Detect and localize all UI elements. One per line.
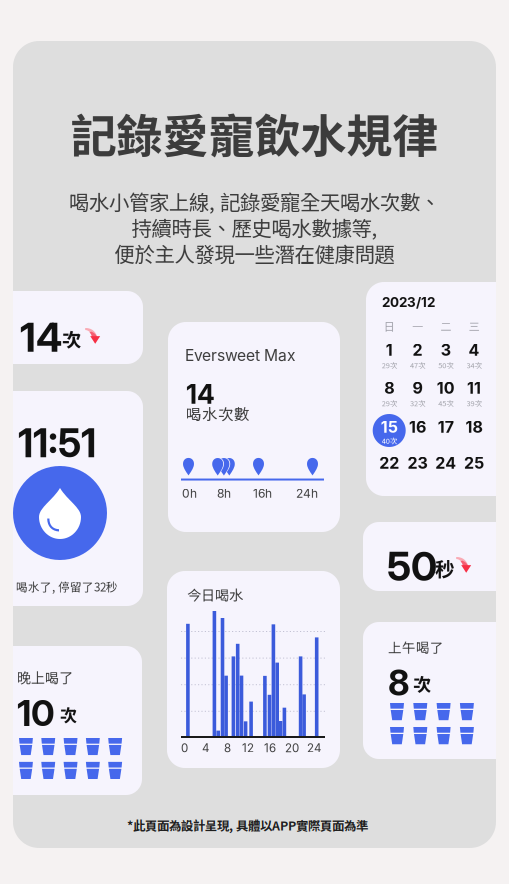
staticText: 32次 [410,398,425,408]
staticText: 10 [437,378,455,398]
staticText: 20 [285,741,299,755]
staticText: 次 [62,325,81,352]
staticText: 日 [384,318,395,334]
staticText: 2 [412,340,422,360]
button[interactable]: 14 [0,0,509,884]
staticText: 50 [387,542,437,590]
staticText: 16 [409,417,426,437]
staticText: 4 [202,741,209,755]
staticText: 晚上喝了 [17,667,73,687]
button[interactable]: 50 [0,0,509,884]
staticText: 喝水了, 停留了32秒 [16,578,118,595]
staticText: 23 [407,453,427,473]
staticText: 次 [413,670,431,696]
staticText: 11:51 [18,420,96,467]
button[interactable]: 晚上喝了 [0,0,509,884]
staticText: 34次 [467,360,482,370]
staticText: 24 [435,453,456,473]
button[interactable]: 上午喝了 [0,0,509,884]
staticText: 12 [242,741,254,755]
staticText: 14 [186,378,215,410]
staticText: 22 [379,453,399,473]
staticText: 喝水次數 [186,402,250,424]
staticText: 9 [412,378,422,398]
button[interactable]: 2023/12 [0,0,509,884]
staticText: 17 [438,417,454,437]
staticText: 二 [440,318,451,334]
staticText: 上午喝了 [388,637,444,656]
staticText: 40次 [382,435,397,446]
staticText: 29次 [382,398,397,408]
button[interactable]: 今日喝水 [0,0,509,884]
staticText: 1 [386,340,393,360]
staticText: 10 [17,691,55,735]
staticText: 8 [384,378,394,398]
staticText: 記錄愛寵飲水規律 [70,100,438,166]
staticText: 50次 [438,360,453,370]
staticText: 2023/12 [382,294,435,310]
staticText: 0 [181,741,188,755]
staticText: 秒 [435,554,455,582]
staticText: *此頁面為設計呈現, 具體以APP實際頁面為準 [127,816,368,834]
staticText: 喝水小管家上線, 記錄愛寵全天喝水次數、 [69,186,440,216]
staticText: 8 [388,662,410,704]
staticText: 持續時長、歷史喝水數據等, [131,212,377,242]
staticText: 三 [469,318,480,334]
staticText: 24h [296,486,318,500]
staticText: 16 [264,741,276,755]
staticText: 24 [307,741,321,755]
staticText: 便於主人發現一些潛在健康問題 [114,238,394,268]
staticText: 今日喝水 [187,584,243,605]
staticText: 16h [253,486,272,500]
staticText: 14 [20,313,62,361]
staticText: 0h [182,486,197,500]
staticText: 一 [412,318,423,334]
staticText: 47次 [410,360,425,370]
button[interactable]: Eversweet Max [0,0,509,884]
staticText: 25 [464,453,484,473]
staticText: 8h [217,486,231,500]
staticText: 39次 [467,398,482,408]
staticText: 次 [60,702,77,727]
staticText: 45次 [438,398,453,408]
staticText: 15 [381,417,398,437]
staticText: 4 [469,340,480,360]
staticText: 3 [441,340,451,360]
staticText: 11 [467,378,481,398]
staticText: 29次 [382,360,397,370]
button[interactable]: 11:51 [0,0,509,884]
staticText: 8 [224,741,231,755]
staticText: Eversweet Max [185,346,296,365]
staticText: 18 [466,417,483,437]
